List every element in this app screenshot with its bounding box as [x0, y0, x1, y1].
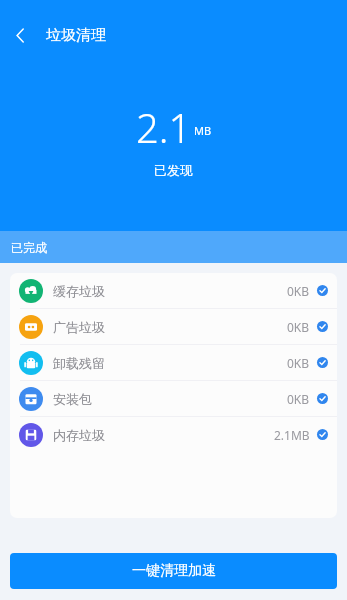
button[interactable]: Back — [0, 16, 40, 54]
staticText: 广告垃圾 — [53, 319, 105, 335]
button[interactable]: 内存垃圾 — [10, 417, 337, 452]
staticText: 已发现 — [154, 162, 193, 178]
staticText: 已完成 — [11, 240, 47, 255]
staticText: 0KB — [287, 355, 310, 371]
staticText: 内存垃圾 — [53, 427, 105, 443]
button[interactable]: 卸载残留 — [10, 345, 337, 380]
staticText: 0KB — [287, 283, 310, 299]
staticText: 2.1 — [136, 100, 192, 154]
staticText: 一键清理加速 — [132, 562, 216, 580]
staticText: 2.1MB — [274, 427, 310, 443]
staticText: MB — [194, 123, 212, 138]
staticText: 安装包 — [53, 391, 92, 407]
button[interactable]: 安装包 — [10, 381, 337, 416]
staticText: 卸载残留 — [53, 355, 105, 371]
staticText: 缓存垃圾 — [53, 283, 105, 299]
button[interactable]: 一键清理加速 — [10, 553, 337, 589]
staticText: 0KB — [287, 319, 310, 335]
button[interactable]: 缓存垃圾 — [10, 273, 337, 308]
button[interactable]: 广告垃圾 — [10, 309, 337, 344]
staticText: 0KB — [287, 391, 310, 407]
staticText: 垃圾清理 — [46, 26, 106, 45]
